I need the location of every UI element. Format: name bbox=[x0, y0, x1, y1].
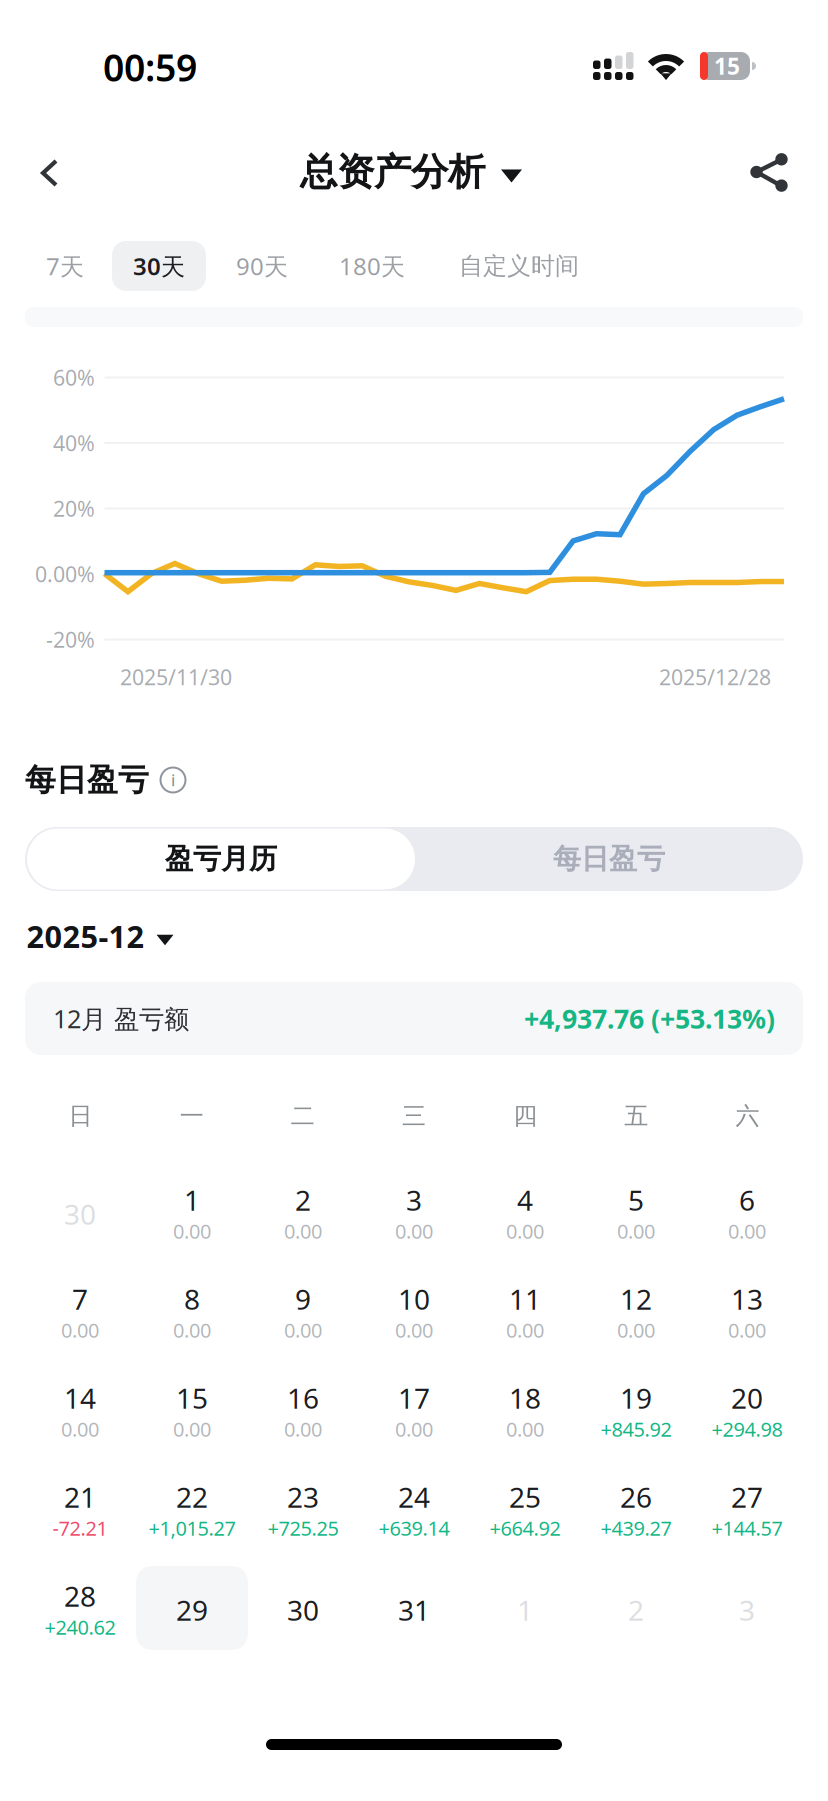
button[interactable]: 27 bbox=[691, 1463, 803, 1555]
staticText: 15 bbox=[714, 51, 740, 81]
button[interactable]: 30天 bbox=[112, 241, 206, 291]
button[interactable]: 23 bbox=[247, 1463, 359, 1555]
staticText: 0.00 bbox=[284, 1317, 322, 1343]
staticText: 1 bbox=[517, 1591, 533, 1629]
button[interactable]: 5 bbox=[580, 1166, 692, 1258]
staticText: 13 bbox=[731, 1280, 763, 1318]
button[interactable]: 15 bbox=[136, 1364, 248, 1456]
button[interactable]: 2 bbox=[580, 1562, 692, 1654]
staticText: +664.92 bbox=[489, 1515, 560, 1541]
button[interactable]: 1 bbox=[136, 1166, 248, 1258]
button[interactable]: 18 bbox=[469, 1364, 581, 1456]
button[interactable]: 自定义时间 bbox=[436, 241, 602, 291]
staticText: 180天 bbox=[339, 250, 405, 282]
staticText: +294.98 bbox=[711, 1416, 782, 1442]
staticText: 12月 盈亏额 bbox=[53, 1002, 189, 1035]
staticText: 30 bbox=[64, 1195, 96, 1233]
button[interactable]: 180天 bbox=[318, 241, 426, 291]
staticText: 28 bbox=[64, 1577, 96, 1615]
staticText: +144.57 bbox=[711, 1515, 782, 1541]
staticText: 自定义时间 bbox=[459, 251, 579, 281]
staticText: 0.00 bbox=[395, 1317, 433, 1343]
staticText: 2025/12/28 bbox=[659, 663, 771, 691]
button[interactable]: 25 bbox=[469, 1463, 581, 1555]
staticText: +639.14 bbox=[378, 1515, 449, 1541]
button[interactable]: 29 bbox=[136, 1562, 248, 1654]
staticText: 30天 bbox=[133, 250, 185, 282]
button[interactable]: 22 bbox=[136, 1463, 248, 1555]
button[interactable]: 13 bbox=[691, 1265, 803, 1357]
staticText: 19 bbox=[620, 1379, 652, 1417]
staticText: 7 bbox=[72, 1280, 88, 1318]
staticText: 4 bbox=[517, 1181, 533, 1219]
button[interactable]: 8 bbox=[136, 1265, 248, 1357]
staticText: 20% bbox=[53, 494, 95, 523]
button[interactable]: 7 bbox=[24, 1265, 136, 1357]
button[interactable]: 20 bbox=[691, 1364, 803, 1456]
staticText: 5 bbox=[628, 1181, 644, 1219]
button[interactable]: 4 bbox=[469, 1166, 581, 1258]
button[interactable]: 31 bbox=[358, 1562, 470, 1654]
button[interactable]: 11 bbox=[469, 1265, 581, 1357]
staticText: 0.00% bbox=[35, 560, 95, 588]
staticText: 10 bbox=[398, 1280, 430, 1318]
staticText: 每日盈亏 bbox=[25, 761, 149, 799]
staticText: 2025/11/30 bbox=[120, 663, 232, 691]
button[interactable]: 21 bbox=[24, 1463, 136, 1555]
button[interactable]: 90天 bbox=[214, 241, 310, 291]
button[interactable]: 每日盈亏 bbox=[415, 828, 803, 889]
staticText: 0.00 bbox=[506, 1416, 544, 1442]
staticText: 14 bbox=[64, 1379, 96, 1417]
button[interactable]: 盈亏月历 bbox=[27, 828, 415, 889]
staticText: 0.00 bbox=[395, 1218, 433, 1244]
button[interactable]: Back bbox=[6, 130, 94, 216]
button[interactable]: 16 bbox=[247, 1364, 359, 1456]
staticText: 27 bbox=[731, 1478, 763, 1516]
button[interactable]: 12 bbox=[580, 1265, 692, 1357]
staticText: -20% bbox=[46, 625, 95, 654]
button[interactable]: 17 bbox=[358, 1364, 470, 1456]
staticText: 每日盈亏 bbox=[553, 842, 665, 876]
staticText: 盈亏月历 bbox=[165, 842, 277, 876]
staticText: 17 bbox=[398, 1379, 430, 1417]
button[interactable]: 30 bbox=[24, 1166, 136, 1258]
button[interactable]: 9 bbox=[247, 1265, 359, 1357]
button[interactable]: 24 bbox=[358, 1463, 470, 1555]
staticText: 7天 bbox=[46, 250, 84, 282]
staticText: +240.62 bbox=[44, 1614, 115, 1640]
staticText: 3 bbox=[406, 1181, 422, 1219]
button[interactable]: 28 bbox=[24, 1562, 136, 1654]
staticText: 0.00 bbox=[728, 1218, 766, 1244]
staticText: 18 bbox=[509, 1379, 541, 1417]
staticText: 0.00 bbox=[61, 1317, 99, 1343]
button[interactable]: 3 bbox=[358, 1166, 470, 1258]
staticText: 0.00 bbox=[284, 1218, 322, 1244]
button[interactable]: 7天 bbox=[27, 241, 103, 291]
button[interactable]: Share bbox=[726, 130, 814, 216]
button[interactable]: 30 bbox=[247, 1562, 359, 1654]
staticText: 四 bbox=[513, 1101, 537, 1131]
button[interactable]: 2025-12 bbox=[26, 911, 173, 961]
staticText: 26 bbox=[620, 1478, 652, 1516]
staticText: 15 bbox=[176, 1379, 208, 1417]
button[interactable]: 总资产分析 bbox=[300, 130, 522, 214]
button[interactable]: 26 bbox=[580, 1463, 692, 1555]
staticText: +845.92 bbox=[600, 1416, 671, 1442]
button[interactable]: 19 bbox=[580, 1364, 692, 1456]
staticText: 0.00 bbox=[617, 1218, 655, 1244]
button[interactable]: 3 bbox=[691, 1562, 803, 1654]
staticText: 二 bbox=[291, 1101, 315, 1131]
button[interactable]: 14 bbox=[24, 1364, 136, 1456]
staticText: 6 bbox=[739, 1181, 755, 1219]
button[interactable]: 10 bbox=[358, 1265, 470, 1357]
staticText: 3 bbox=[739, 1591, 755, 1629]
staticText: 20 bbox=[731, 1379, 763, 1417]
staticText: 0.00 bbox=[173, 1218, 211, 1244]
button[interactable]: 2 bbox=[247, 1166, 359, 1258]
button[interactable]: 6 bbox=[691, 1166, 803, 1258]
staticText: 16 bbox=[287, 1379, 319, 1417]
staticText: 9 bbox=[295, 1280, 311, 1318]
staticText: 11 bbox=[509, 1280, 541, 1318]
staticText: 12 bbox=[620, 1280, 652, 1318]
